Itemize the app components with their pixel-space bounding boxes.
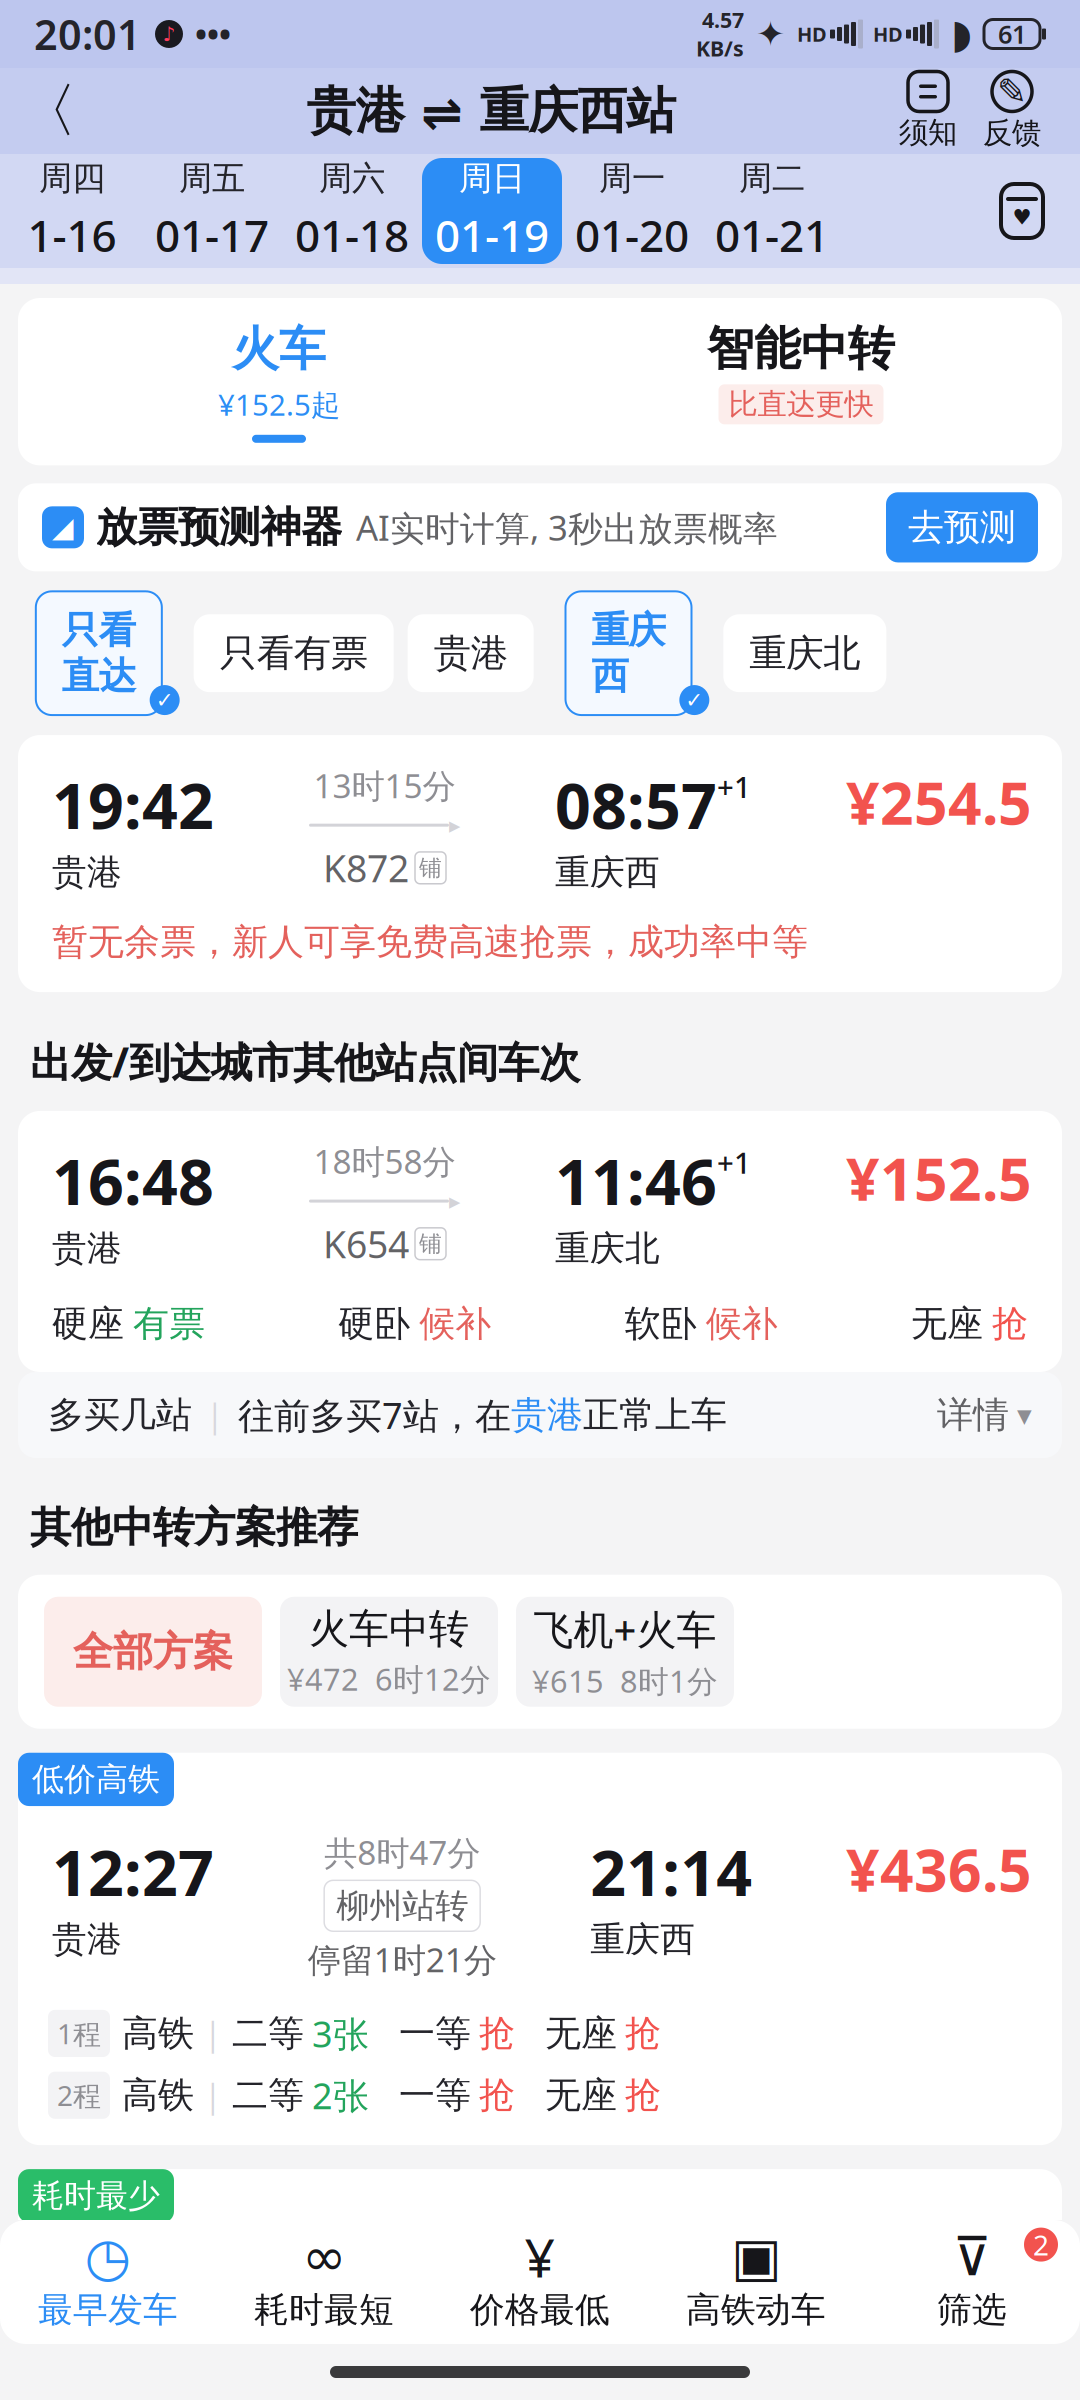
staticText: 全部方案 [73,1627,233,1676]
staticText: 重庆西 [590,1918,695,1961]
staticText: 有票 [133,1302,205,1346]
staticText: 3张 [312,2009,369,2057]
staticText: 12:27 [52,1830,214,1913]
staticText: 19:42 [52,763,214,846]
staticText: 贵港 [511,1393,583,1437]
staticText: 须知 [899,114,957,150]
button[interactable]: 低价高铁 [0,1753,1080,2145]
staticText: 放票预测神器 [96,502,342,553]
button[interactable]: ⊽ [864,2226,1080,2338]
button[interactable]: 贵港 [408,614,534,692]
staticText: ¥615 8时1分 [532,1660,718,1701]
staticText: ¥152.5 [846,1139,1032,1217]
staticText: 多买几站 [48,1393,192,1437]
staticText: 二等 [232,2073,304,2117]
button[interactable]: ◷ [0,2226,216,2338]
staticText: 〈 [18,75,77,147]
staticText: ✓ [685,688,703,712]
button[interactable]: ◢ [0,483,1080,571]
staticText: 重庆北 [749,630,860,676]
button[interactable]: 返回 [0,70,96,152]
button[interactable]: ∞ [216,2226,432,2338]
button[interactable]: 智能中转 [540,320,1062,443]
staticText: 2张 [312,2071,369,2119]
staticText: 低价高铁 [32,1760,160,1799]
button[interactable]: 只看有票 [194,614,394,692]
button[interactable]: 重庆北 [723,614,886,692]
staticText: 2程 [57,2077,101,2114]
button[interactable]: 周六 [282,158,422,264]
staticText: 最早发车 [38,2289,178,2331]
staticText: 二等 [232,2011,304,2055]
staticText: 停留1时21分 [308,1937,497,1982]
staticText: 17:14 [624,2246,786,2330]
staticText: ✦ [756,14,785,54]
button[interactable]: 火车中转 [280,1597,498,1707]
staticText: 火车中转 [309,1604,469,1653]
staticText: 11:46 [555,1139,717,1222]
staticText: +1 [717,1143,751,1182]
staticText: 重庆北 [555,1227,660,1270]
button[interactable]: 19:42 [0,735,1080,992]
button[interactable]: 飞机+火车 [516,1597,734,1707]
staticText: 耗时最少 [32,2176,160,2215]
staticText: 01-20 [575,206,689,264]
staticText: ✓ [156,688,174,712]
button[interactable]: 周四 [2,158,142,264]
staticText: 智能中转 [707,320,895,377]
staticText: 候补 [706,1302,778,1346]
button[interactable]: 周五 [142,158,282,264]
staticText: 其他中转方案推荐 [30,1502,358,1553]
staticText: 暂无余票，新人可享免费高速抢票，成功率中等 [52,920,808,964]
button[interactable]: 只看直达 [18,591,180,715]
staticText: 周二 [739,158,805,199]
staticText: ¥ [524,2221,555,2292]
staticText: 抢 [479,2073,515,2117]
staticText: HD [873,21,903,47]
button[interactable]: 火车 [18,320,540,443]
staticText: HD [797,21,827,47]
staticText: 周一 [599,158,665,199]
staticText: 只看直达 [62,607,136,699]
staticText: 出发/到达城市其他站点间车次 [30,1034,580,1089]
staticText: ▸ [449,1188,460,1214]
staticText: ◗ [951,11,972,57]
button[interactable]: ¥ [432,2226,648,2338]
button[interactable]: 日历 [976,158,1068,264]
button[interactable]: 重庆西 [548,591,709,715]
button[interactable]: 全部方案 [44,1597,262,1707]
button[interactable]: 16:48 [18,1111,1062,1372]
staticText: 南宁东站转 [336,2302,501,2343]
staticText: 价格最低 [470,2289,610,2331]
staticText: 抢 [992,1302,1028,1346]
staticText: 01-18 [295,206,409,264]
staticText: 耗时最短 [254,2289,394,2331]
staticText: ∞ [302,2226,346,2287]
staticText: 周六 [319,158,385,199]
staticText: 比直达更快 [728,386,873,422]
staticText: 01-21 [715,206,829,264]
button[interactable]: ▣ [648,2226,864,2338]
staticText: 高铁 [122,2011,194,2055]
staticText: ¥152.5起 [218,385,340,424]
staticText: 软卧 [625,1302,697,1346]
staticText: 61 [998,17,1026,51]
button[interactable]: ✎ [970,71,1064,151]
staticText: 飞机+火车 [533,1602,716,1655]
button[interactable]: 周二 [702,158,842,264]
staticText: ◢ [52,511,74,543]
staticText: 硬卧 [338,1302,410,1346]
button[interactable]: 周一 [562,158,702,264]
staticText: ▸ [449,812,460,838]
button[interactable]: 周日 [422,158,562,264]
button[interactable]: 耗时最少 [0,2169,1080,2400]
staticText: 高铁动车 [686,2289,826,2331]
button[interactable]: 多买几站 [18,1372,1062,1458]
staticText: ▣ [731,2226,781,2287]
button[interactable]: 须知 [886,71,970,150]
staticText: 1程 [57,2015,101,2052]
staticText: K654 [323,1219,409,1269]
staticText: 18时58分 [313,1139,455,1183]
staticText: 一等 [399,2011,471,2055]
